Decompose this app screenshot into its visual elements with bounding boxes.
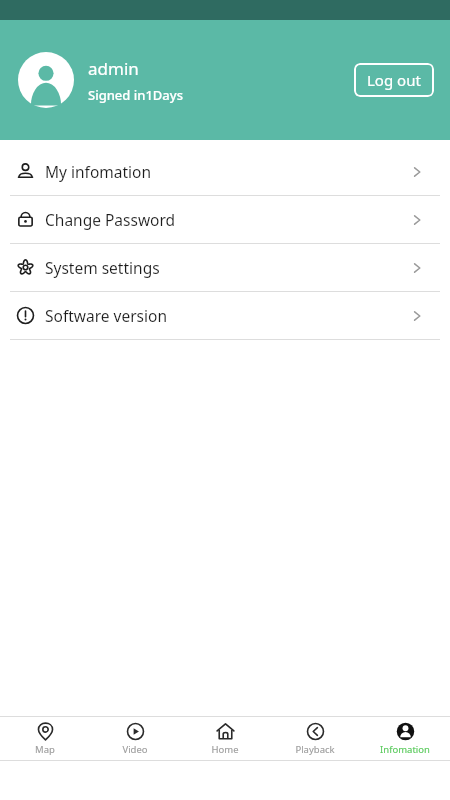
button[interactable]: Map [0, 722, 90, 756]
staticText: Playback [295, 743, 335, 756]
button[interactable]: Playback [270, 722, 360, 756]
button[interactable]: System settings [0, 244, 450, 291]
staticText: Software version [45, 305, 167, 326]
staticText: Map [35, 743, 55, 756]
button[interactable]: My infomation [0, 148, 450, 195]
staticText: Change Password [45, 209, 176, 230]
button[interactable]: Software version [0, 292, 450, 339]
staticText: Home [211, 743, 239, 756]
staticText: Log out [367, 70, 421, 90]
staticText: System settings [45, 257, 160, 278]
button[interactable]: Home [180, 722, 270, 756]
button[interactable]: Infomation [360, 722, 450, 756]
staticText: Signed in1Days [88, 86, 183, 104]
button[interactable]: Log out [354, 63, 434, 97]
staticText: Infomation [380, 743, 430, 756]
button[interactable]: Change Password [0, 196, 450, 243]
staticText: My infomation [45, 161, 152, 182]
button[interactable]: Video [90, 722, 180, 756]
staticText: admin [88, 57, 139, 80]
staticText: Video [122, 743, 148, 756]
